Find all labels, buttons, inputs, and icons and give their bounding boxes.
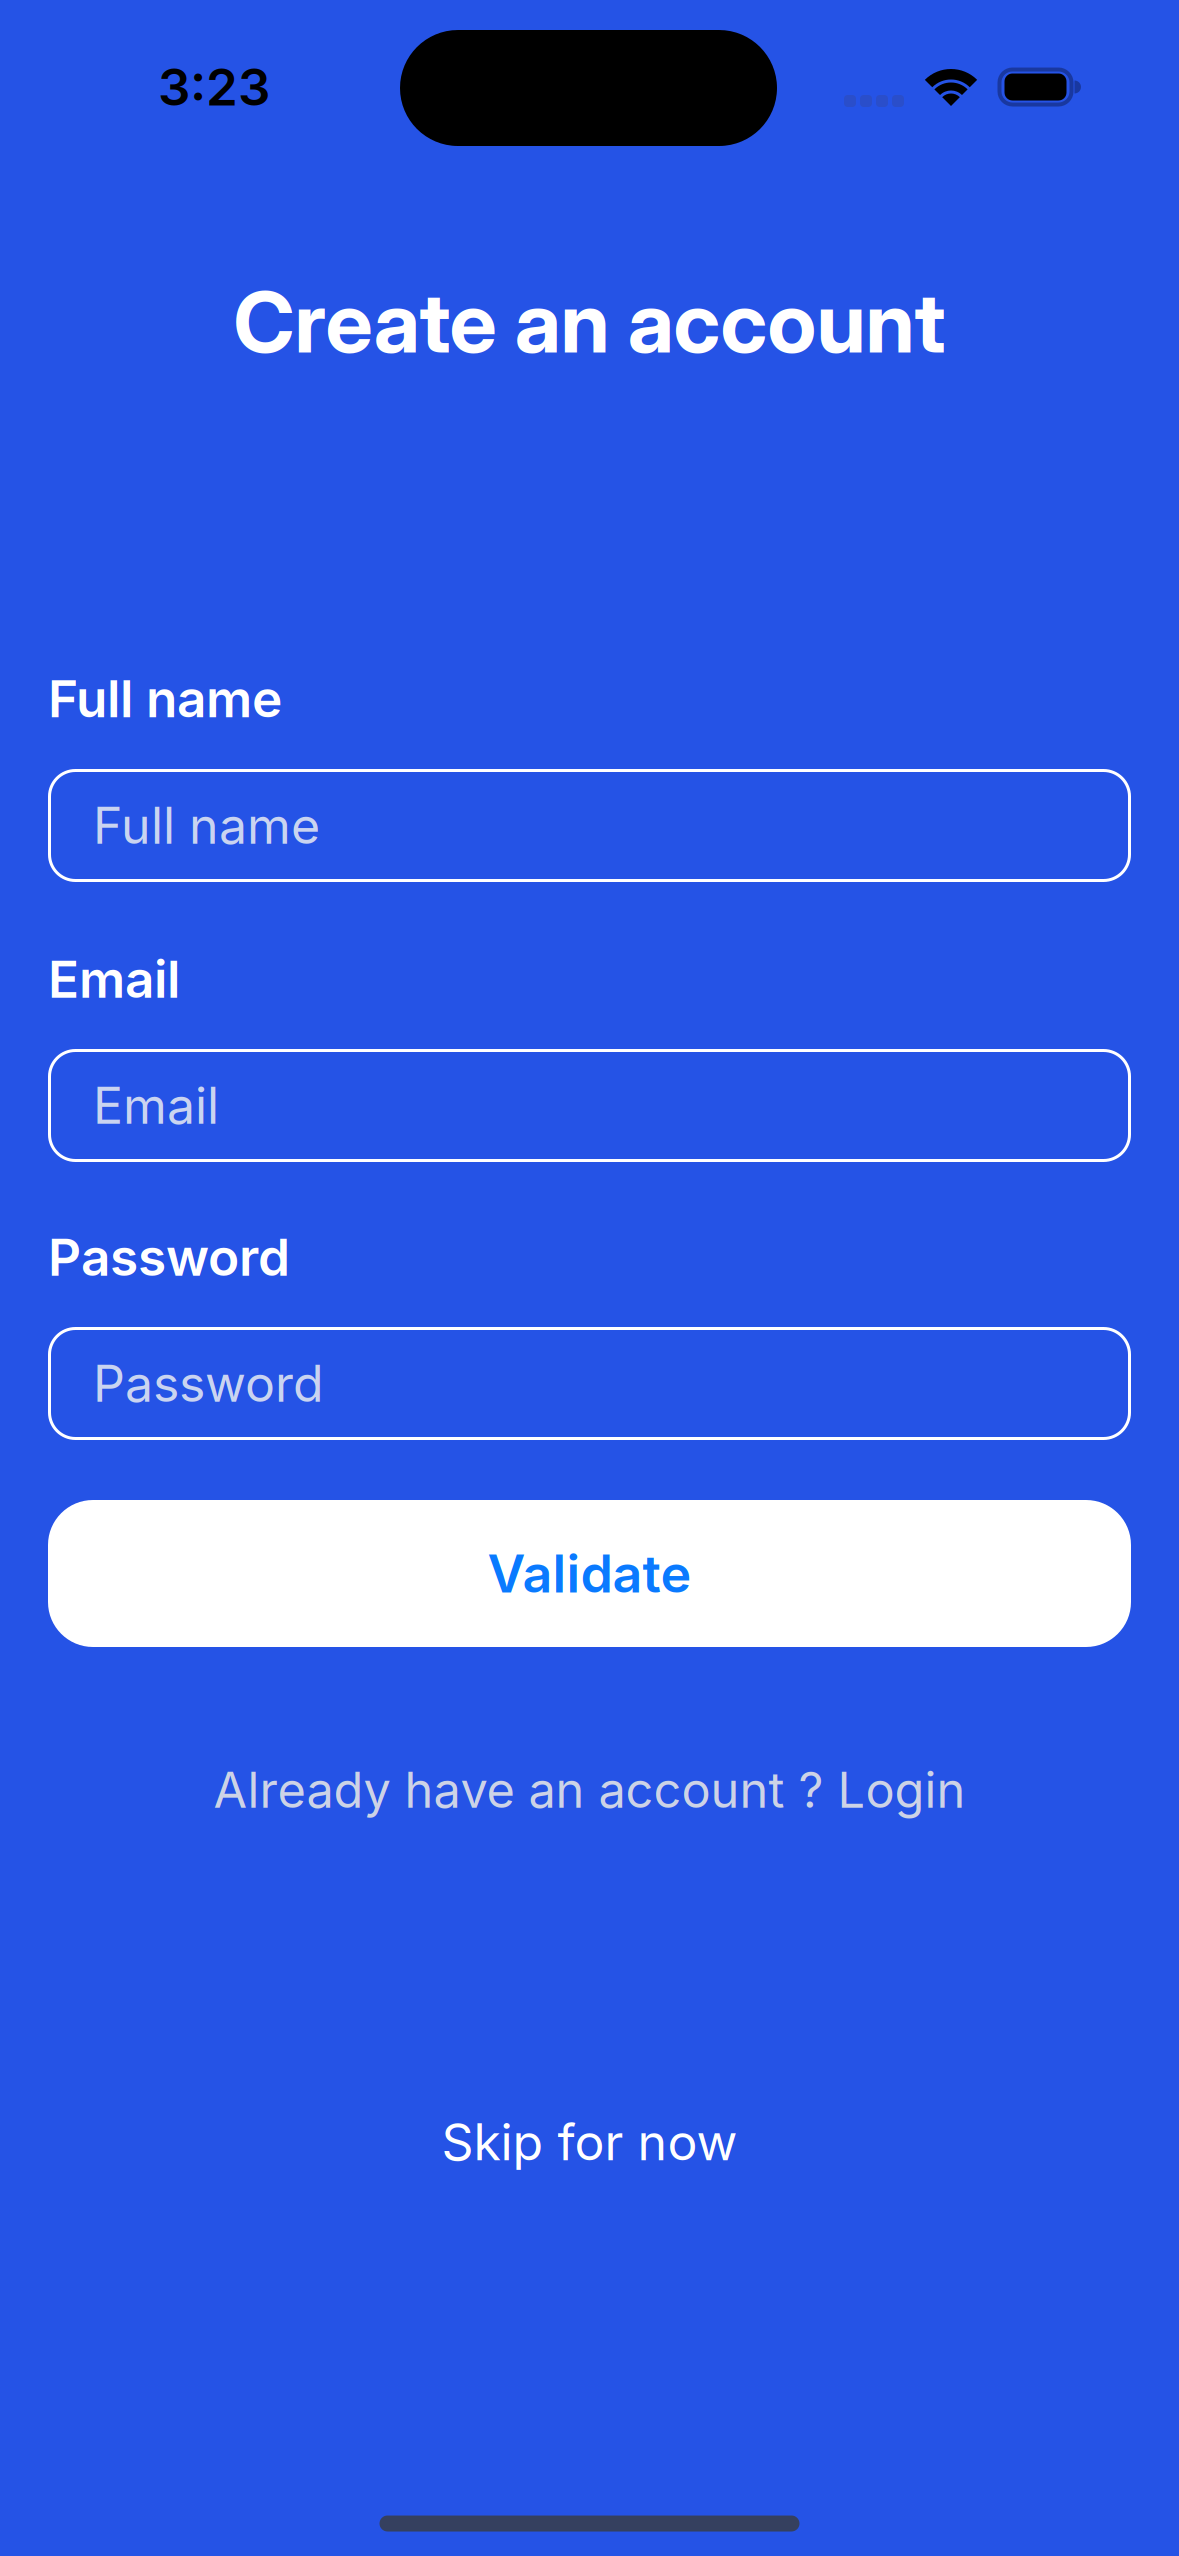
staticText: Email (93, 1075, 219, 1136)
button[interactable]: Password (48, 1327, 1131, 1440)
button[interactable]: Skip for now (441, 2112, 737, 2172)
staticText: Skip for now (441, 2112, 737, 2172)
button[interactable]: Full name (48, 769, 1131, 882)
staticText: Validate (487, 1542, 691, 1605)
button[interactable]: Validate (48, 1500, 1131, 1647)
staticText: Already have an account ? Login (213, 1761, 965, 1819)
button[interactable]: Email (48, 1049, 1131, 1162)
staticText: Password (48, 1226, 290, 1288)
staticText: Create an account (233, 271, 945, 373)
button[interactable]: Already have an account ? Login (213, 1761, 965, 1819)
staticText: Full name (93, 795, 320, 856)
staticText: 3:23 (158, 56, 270, 118)
staticText: Full name (48, 667, 282, 729)
staticText: Email (48, 948, 180, 1010)
staticText: Password (93, 1353, 324, 1414)
